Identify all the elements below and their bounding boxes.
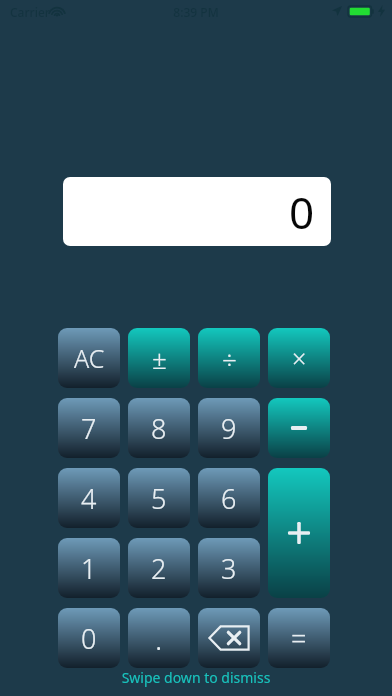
button[interactable]: × [268,328,330,388]
button[interactable]: 7 [58,398,120,458]
button[interactable]: AC [58,328,120,388]
button[interactable]: 8 [128,398,190,458]
staticText: 3 [221,550,237,587]
staticText: 8 [151,410,167,447]
staticText: 9 [221,410,237,447]
staticText: ÷ [222,341,237,376]
button[interactable]: 5 [128,468,190,528]
staticText: AC [74,341,105,375]
button[interactable]: 4 [58,468,120,528]
staticText: 2 [151,550,167,587]
button[interactable]: Plus [268,468,330,598]
staticText: 0 [289,182,315,242]
staticText: 0 [81,620,97,657]
button[interactable]: 6 [198,468,260,528]
button[interactable]: 1 [58,538,120,598]
button[interactable]: ÷ [198,328,260,388]
staticText: 5 [151,480,167,517]
button[interactable]: 0 [58,608,120,668]
staticText: 7 [81,410,97,447]
button[interactable]: ± [128,328,190,388]
staticText: 8:39 PM [0,4,392,20]
staticText: ± [152,341,167,376]
button[interactable]: 9 [198,398,260,458]
button[interactable]: = [268,608,330,668]
button[interactable]: . [128,608,190,668]
button[interactable]: Backspace [198,608,260,668]
button[interactable]: Minus [268,398,330,458]
staticText: 4 [81,480,97,517]
staticText: 6 [221,480,237,517]
button[interactable]: 2 [128,538,190,598]
button[interactable]: 0 [63,177,331,246]
staticText: 1 [81,550,97,587]
button[interactable]: 3 [198,538,260,598]
staticText: = [291,620,307,657]
staticText: Swipe down to dismiss [0,668,392,687]
staticText: Carrier [10,4,50,20]
staticText: × [292,341,307,375]
staticText: . [155,618,163,659]
